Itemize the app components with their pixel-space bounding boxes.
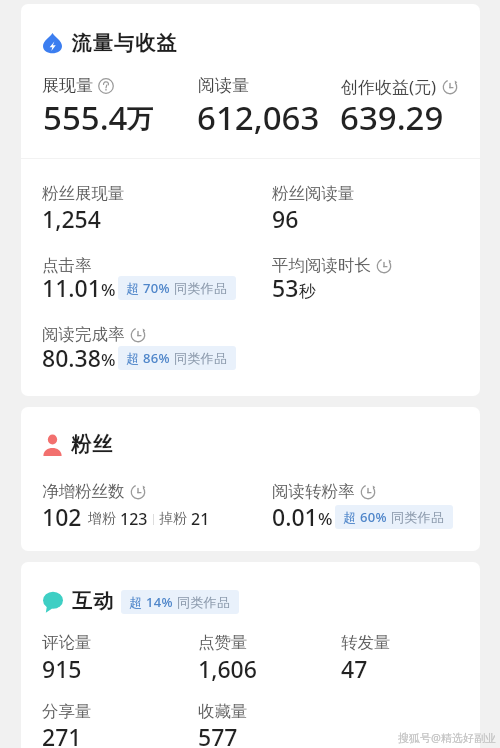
staticText: 271 xyxy=(42,721,82,748)
button[interactable]: 平均阅读时长 53秒 xyxy=(272,253,462,301)
staticText: 秒 xyxy=(299,281,316,302)
staticText: 收藏量 xyxy=(198,701,248,722)
staticText: 搜狐号@精选好副业 xyxy=(398,730,496,745)
button[interactable]: 收益更新时间 xyxy=(442,79,458,95)
staticText: 净增粉丝数 xyxy=(42,481,125,502)
staticText: 超 70% xyxy=(126,279,170,297)
staticText: 80.38 xyxy=(42,342,101,373)
staticText: 21 xyxy=(191,508,210,530)
staticText: 577 xyxy=(198,721,238,748)
staticText: 123 xyxy=(120,508,148,530)
button[interactable]: 点击率 11.01% 超70%同类作品 xyxy=(42,253,267,301)
staticText: 掉粉 xyxy=(159,510,187,528)
staticText: 粉丝阅读量 xyxy=(272,183,355,204)
button[interactable]: 阅读转粉率 0.01% 超60%同类作品 xyxy=(272,479,462,527)
staticText: 粉丝展现量 xyxy=(42,183,125,204)
staticText: 639.29 xyxy=(340,95,444,140)
button[interactable]: 净增粉丝数更新时间 xyxy=(130,484,146,500)
staticText: 点赞量 xyxy=(198,632,248,653)
staticText: 1,254 xyxy=(42,203,101,234)
staticText: 同类作品 xyxy=(174,350,228,366)
button[interactable]: 超 70% xyxy=(118,276,236,300)
button[interactable]: 展现量 555.4万 xyxy=(42,73,190,135)
staticText: 平均阅读时长 xyxy=(272,255,371,276)
staticText: 同类作品 xyxy=(391,509,445,525)
button[interactable]: 阅读量 612,063 xyxy=(194,73,332,135)
staticText: 创作收益(元) xyxy=(341,75,437,98)
button[interactable]: 净增粉丝数 102 xyxy=(42,479,267,527)
staticText: 超 86% xyxy=(126,349,170,367)
button[interactable]: 点赞量 1,606 xyxy=(198,630,336,678)
staticText: 流量与收益 xyxy=(71,31,177,56)
staticText: 阅读完成率 xyxy=(42,324,125,345)
staticText: 展现量 xyxy=(42,75,93,96)
staticText: 万 xyxy=(127,103,153,136)
staticText: 96 xyxy=(272,203,299,234)
button[interactable]: 平均阅读时长更新时间 xyxy=(376,258,392,274)
button[interactable]: 粉丝阅读量 96 xyxy=(272,181,462,229)
button[interactable]: 超 14% xyxy=(121,590,239,614)
staticText: 555.4 xyxy=(43,95,128,140)
staticText: 612,063 xyxy=(197,95,320,140)
staticText: 102 xyxy=(42,501,82,532)
button[interactable]: 阅读完成率 80.38% 超86%同类作品 xyxy=(42,322,267,372)
staticText: 915 xyxy=(42,653,82,684)
staticText: 评论量 xyxy=(42,632,92,653)
button[interactable]: 互动 xyxy=(43,589,243,614)
staticText: 同类作品 xyxy=(177,594,231,610)
button[interactable]: 展现量说明 xyxy=(98,78,114,94)
button[interactable]: 收藏量 577 xyxy=(198,699,336,746)
button[interactable]: 超 86% xyxy=(118,346,236,370)
button[interactable]: 分享量 271 xyxy=(42,699,190,746)
button[interactable]: 粉丝 xyxy=(43,432,120,457)
staticText: 超 14% xyxy=(129,593,173,611)
button[interactable]: 超 60% xyxy=(335,505,453,529)
staticText: 增粉 xyxy=(88,510,116,528)
staticText: % xyxy=(101,348,116,371)
button[interactable]: 转发量 47 xyxy=(341,630,477,678)
staticText: % xyxy=(318,507,333,530)
staticText: 粉丝 xyxy=(71,432,114,457)
staticText: 53 xyxy=(272,272,299,303)
button[interactable]: 粉丝展现量 1,254 xyxy=(42,181,267,229)
staticText: 1,606 xyxy=(198,653,257,684)
button[interactable]: 评论量 915 xyxy=(42,630,190,678)
button[interactable]: 创作收益(元) 639.29 xyxy=(337,73,473,135)
staticText: 互动 xyxy=(72,589,115,614)
button[interactable]: 流量与收益 xyxy=(43,31,183,56)
staticText: 47 xyxy=(341,653,368,684)
staticText: 阅读量 xyxy=(198,75,249,96)
button[interactable]: 阅读完成率更新时间 xyxy=(130,327,146,343)
staticText: % xyxy=(101,278,116,301)
staticText: 11.01 xyxy=(42,272,101,303)
staticText: 点击率 xyxy=(42,255,92,276)
staticText: 分享量 xyxy=(42,701,92,722)
staticText: 转发量 xyxy=(341,632,391,653)
staticText: 阅读转粉率 xyxy=(272,481,355,502)
staticText: 同类作品 xyxy=(174,280,228,296)
staticText: 超 60% xyxy=(343,508,387,526)
staticText: 0.01 xyxy=(272,501,318,532)
button[interactable]: 阅读转粉率更新时间 xyxy=(360,484,376,500)
